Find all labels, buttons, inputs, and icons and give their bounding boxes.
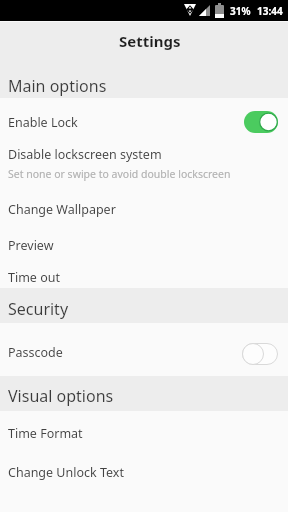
button[interactable]: Time out [0, 262, 288, 288]
button[interactable]: Passcode [0, 323, 288, 376]
button[interactable]: Change Unlock Text [0, 452, 288, 490]
staticText: 31% [230, 4, 251, 18]
staticText: Security [8, 298, 69, 320]
button[interactable]: Time Format [0, 411, 288, 452]
staticText: Settings [119, 31, 181, 51]
staticText: Visual options [8, 385, 114, 407]
button[interactable]: Disable lockscreen system [0, 140, 288, 186]
button[interactable]: Preview [0, 228, 288, 262]
staticText: Main options [8, 75, 107, 97]
staticText: Change Unlock Text [8, 464, 124, 481]
button[interactable]: Enable Lock [0, 101, 288, 143]
staticText: Passcode [8, 344, 242, 361]
staticText: Disable lockscreen system [8, 146, 162, 163]
staticText: Time out [8, 269, 60, 286]
staticText: Set none or swipe to avoid double locksc… [8, 167, 231, 181]
staticText: Time Format [8, 425, 83, 442]
button[interactable]: Change Wallpaper [0, 186, 288, 228]
staticText: Preview [8, 237, 54, 254]
staticText: 13:44 [257, 4, 283, 18]
staticText: Change Wallpaper [8, 201, 116, 218]
staticText: Enable Lock [8, 114, 242, 131]
